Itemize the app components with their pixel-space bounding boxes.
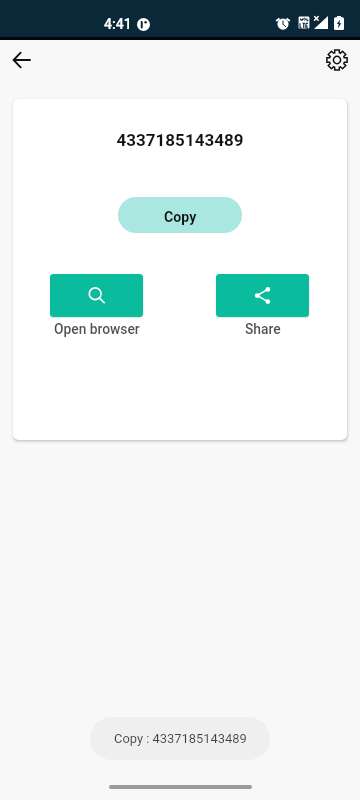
button[interactable]: Open browser <box>50 274 143 317</box>
button[interactable]: Copy <box>118 197 242 233</box>
button[interactable]: Copy : 4337185143489 <box>90 717 270 760</box>
staticText: Open browser <box>54 321 140 337</box>
staticText: 4337185143489 <box>13 130 347 150</box>
staticText: Share <box>245 321 281 337</box>
staticText: Copy : 4337185143489 <box>114 731 247 746</box>
button[interactable]: Back <box>0 38 43 82</box>
staticText: 4:41 <box>104 16 132 32</box>
staticText: Copy <box>164 209 197 226</box>
button[interactable]: Share <box>216 274 309 317</box>
button[interactable]: Settings <box>315 38 359 82</box>
